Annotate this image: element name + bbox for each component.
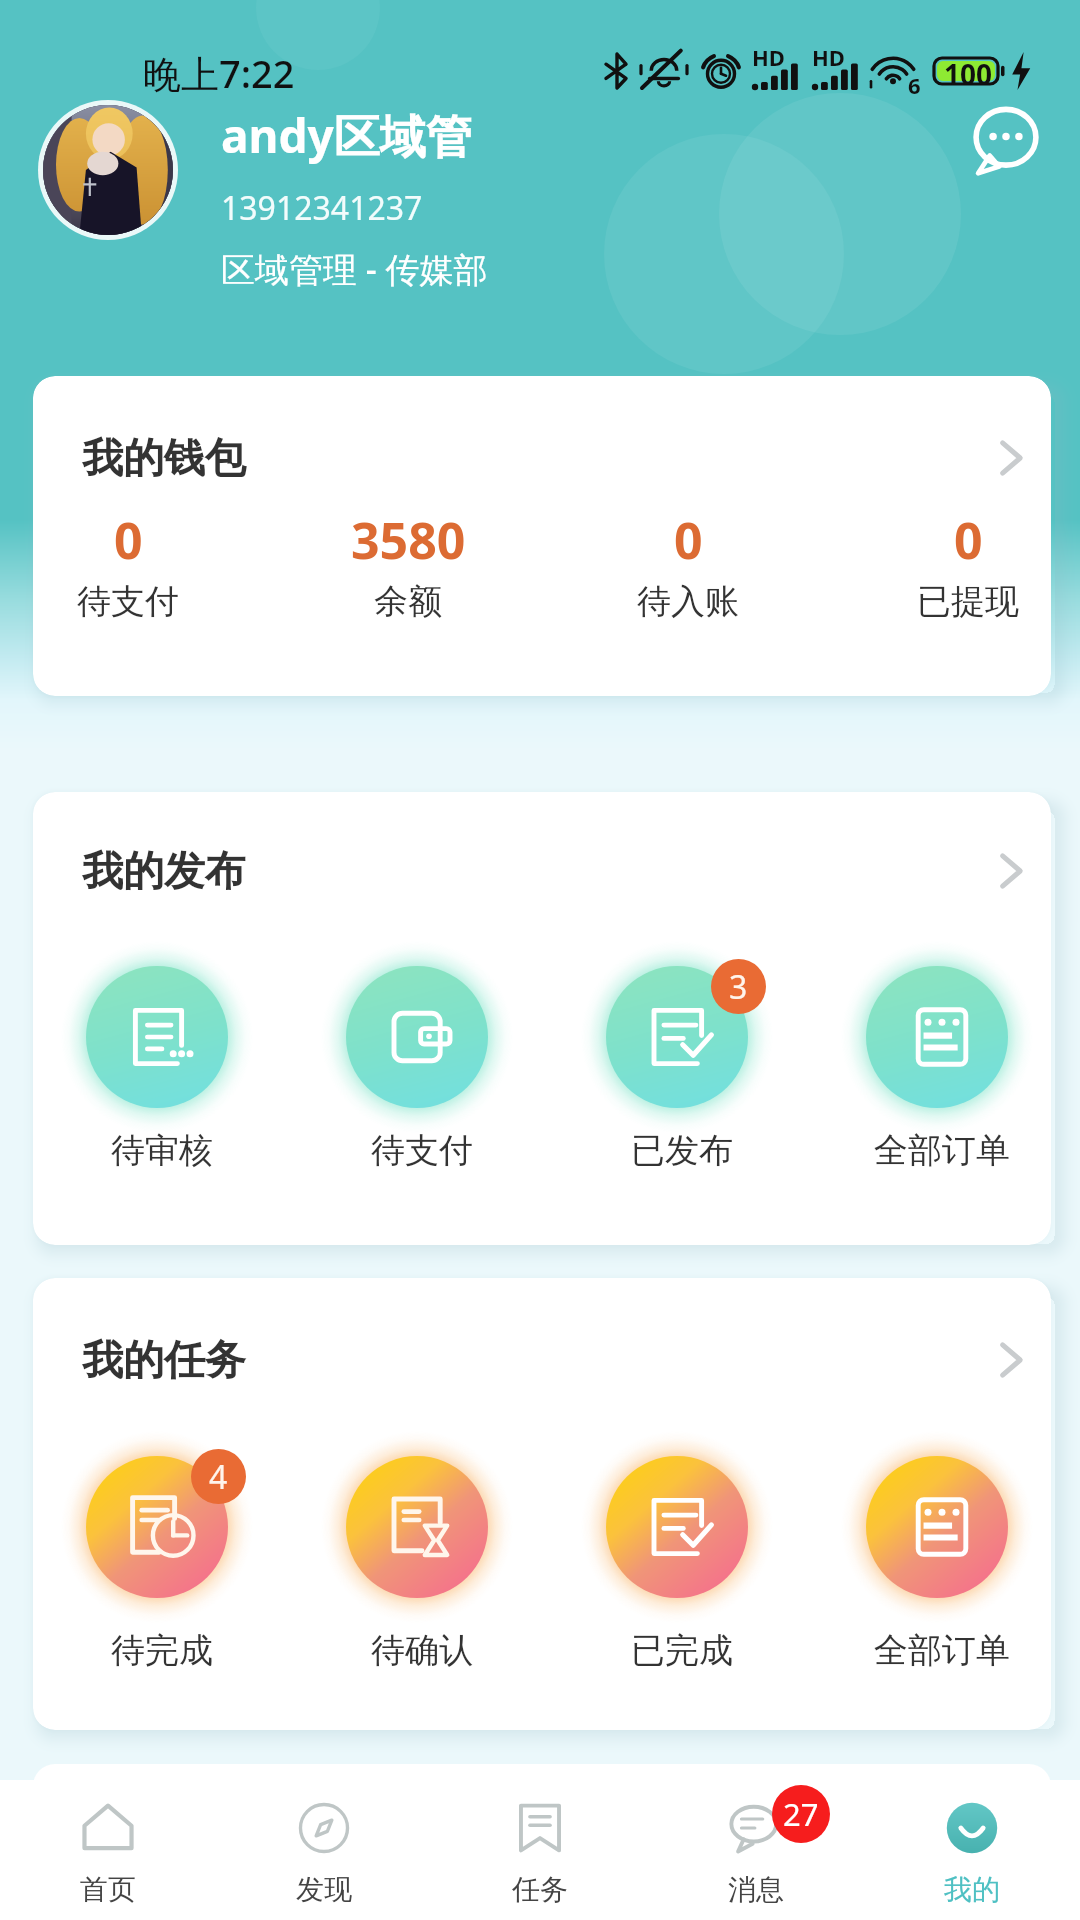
button[interactable]: 任务 [432, 1780, 648, 1920]
staticText: 区域管理 - 传媒部 [221, 246, 488, 292]
button[interactable]: Avatar [43, 105, 173, 235]
staticText: 全部订单 [874, 1129, 1010, 1172]
button[interactable] [86, 966, 228, 1108]
staticText: 0 [114, 506, 143, 574]
staticText: 待完成 [111, 1629, 213, 1672]
button[interactable]: 0 [33, 506, 268, 626]
button[interactable]: 我的钱包 [33, 376, 1051, 503]
button[interactable] [346, 1456, 488, 1598]
staticText: 待支付 [371, 1129, 473, 1172]
staticText: 待入账 [637, 580, 739, 623]
staticText: HD [812, 42, 845, 72]
staticText: 消息 [728, 1872, 784, 1907]
button[interactable]: 0 [548, 506, 828, 626]
staticText: 3580 [351, 506, 466, 574]
staticText: 100 [944, 55, 993, 93]
staticText: 我的任务 [82, 1335, 246, 1387]
button[interactable] [86, 1456, 228, 1598]
button[interactable]: 我的 [864, 1780, 1080, 1920]
button[interactable] [866, 1456, 1008, 1598]
staticText: 任务 [512, 1872, 568, 1907]
button[interactable] [346, 966, 488, 1108]
staticText: 13912341237 [221, 186, 423, 230]
staticText: 全部订单 [874, 1629, 1010, 1672]
staticText: 27 [783, 1793, 819, 1835]
staticText: HD [752, 42, 785, 72]
button[interactable] [606, 1456, 748, 1598]
staticText: 晚上7:22 [143, 47, 295, 99]
staticText: 0 [674, 506, 703, 574]
button[interactable]: 3580 [268, 506, 548, 626]
staticText: 余额 [374, 580, 442, 623]
staticText: 待审核 [111, 1129, 213, 1172]
staticText: andy区域管 [221, 104, 472, 167]
staticText: 我的钱包 [82, 433, 246, 485]
staticText: 我的发布 [82, 846, 246, 898]
staticText: 发现 [296, 1872, 352, 1907]
button[interactable]: 27 [648, 1780, 864, 1920]
staticText: 待确认 [371, 1629, 473, 1672]
button[interactable] [866, 966, 1008, 1108]
staticText: 6 [908, 70, 921, 100]
staticText: 已提现 [917, 580, 1019, 623]
button[interactable]: 我的任务 [33, 1278, 1051, 1405]
staticText: 我的 [944, 1872, 1000, 1907]
button[interactable] [606, 966, 748, 1108]
staticText: 0 [954, 506, 983, 574]
button[interactable]: 0 [828, 506, 1051, 626]
staticText: 首页 [80, 1872, 136, 1907]
button[interactable]: 发现 [216, 1780, 432, 1920]
staticText: 待支付 [77, 580, 179, 623]
staticText: 已发布 [631, 1129, 733, 1172]
button[interactable]: 我的发布 [33, 792, 1051, 916]
staticText: 3 [729, 965, 748, 1009]
button[interactable]: Messages [960, 96, 1052, 188]
staticText: 已完成 [631, 1629, 733, 1672]
staticText: 4 [209, 1455, 228, 1499]
button[interactable]: 首页 [0, 1780, 216, 1920]
